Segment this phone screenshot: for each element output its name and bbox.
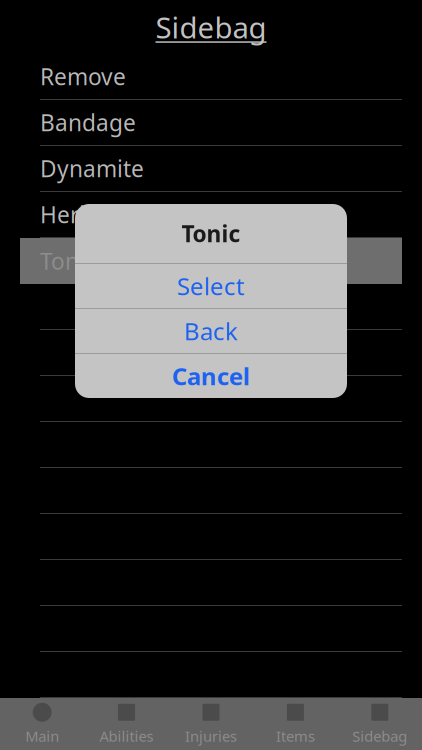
staticText: Bandage [40, 107, 136, 137]
button[interactable]: Sidebag [338, 698, 422, 750]
button[interactable]: Select [75, 264, 347, 308]
button[interactable]: Back [75, 309, 347, 353]
button[interactable]: Tonic [0, 238, 422, 284]
button[interactable]: Cancel [75, 354, 347, 398]
staticText: Abilities [100, 726, 154, 746]
staticText: Tonic [181, 218, 240, 248]
button[interactable]: Herbs [0, 192, 422, 238]
button[interactable]: Dynamite [0, 146, 422, 192]
staticText: Herbs [40, 199, 104, 229]
staticText: Sidebag [155, 7, 266, 46]
button[interactable]: Bandage [0, 100, 422, 146]
staticText: Dynamite [40, 153, 144, 183]
button[interactable]: Main [0, 698, 84, 750]
staticText: Select [177, 270, 245, 302]
staticText: Main [25, 726, 59, 746]
button[interactable]: Remove [0, 54, 422, 100]
staticText: Items [276, 726, 315, 746]
staticText: Injuries [185, 726, 237, 746]
staticText: Tonic [40, 246, 96, 276]
button[interactable]: Items [253, 698, 338, 750]
button[interactable]: Abilities [84, 698, 169, 750]
button[interactable]: Injuries [169, 698, 253, 750]
staticText: Remove [40, 61, 126, 91]
staticText: Cancel [172, 360, 250, 392]
staticText: Back [184, 315, 238, 347]
staticText: Sidebag [352, 726, 407, 746]
